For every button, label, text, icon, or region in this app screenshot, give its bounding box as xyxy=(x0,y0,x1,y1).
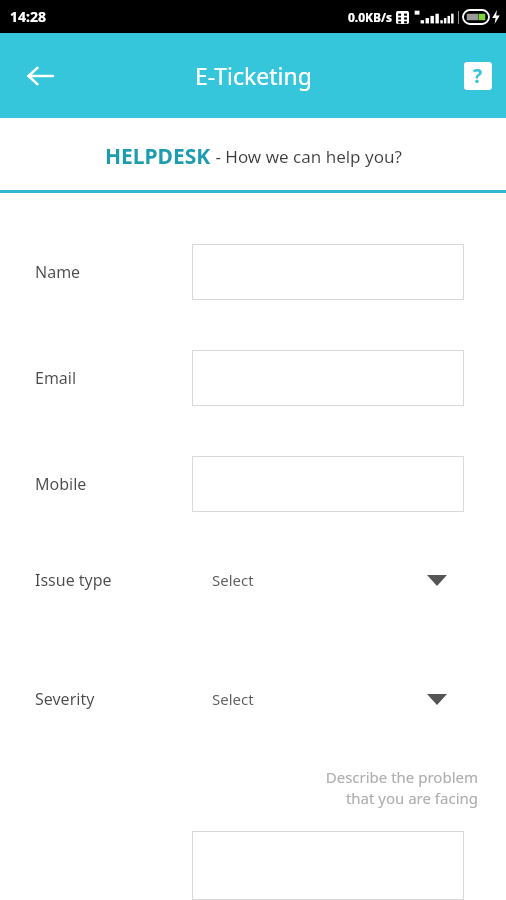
staticText: Issue type xyxy=(35,569,112,591)
staticText: 14:28 xyxy=(10,7,46,26)
staticText: HELPDESK xyxy=(105,142,211,171)
button[interactable]: Select xyxy=(177,564,464,596)
staticText: 0.0KB/s xyxy=(348,9,393,25)
button[interactable]: Help xyxy=(464,62,492,90)
button[interactable]: Back xyxy=(14,50,66,102)
staticText: Select xyxy=(212,570,254,590)
button[interactable] xyxy=(192,831,464,900)
staticText: ? xyxy=(473,63,483,89)
button[interactable] xyxy=(192,456,464,512)
staticText: E-Ticketing xyxy=(195,60,312,91)
staticText: - How we can help you? xyxy=(211,145,402,168)
staticText: Name xyxy=(35,261,81,283)
staticText: Mobile xyxy=(35,473,87,495)
staticText: Describe the problem that you are facing xyxy=(325,767,478,809)
staticText: Severity xyxy=(35,688,95,710)
button[interactable]: Select xyxy=(177,683,464,715)
button[interactable] xyxy=(192,244,464,300)
staticText: Email xyxy=(35,367,77,389)
button[interactable] xyxy=(192,350,464,406)
staticText: Select xyxy=(212,689,254,709)
